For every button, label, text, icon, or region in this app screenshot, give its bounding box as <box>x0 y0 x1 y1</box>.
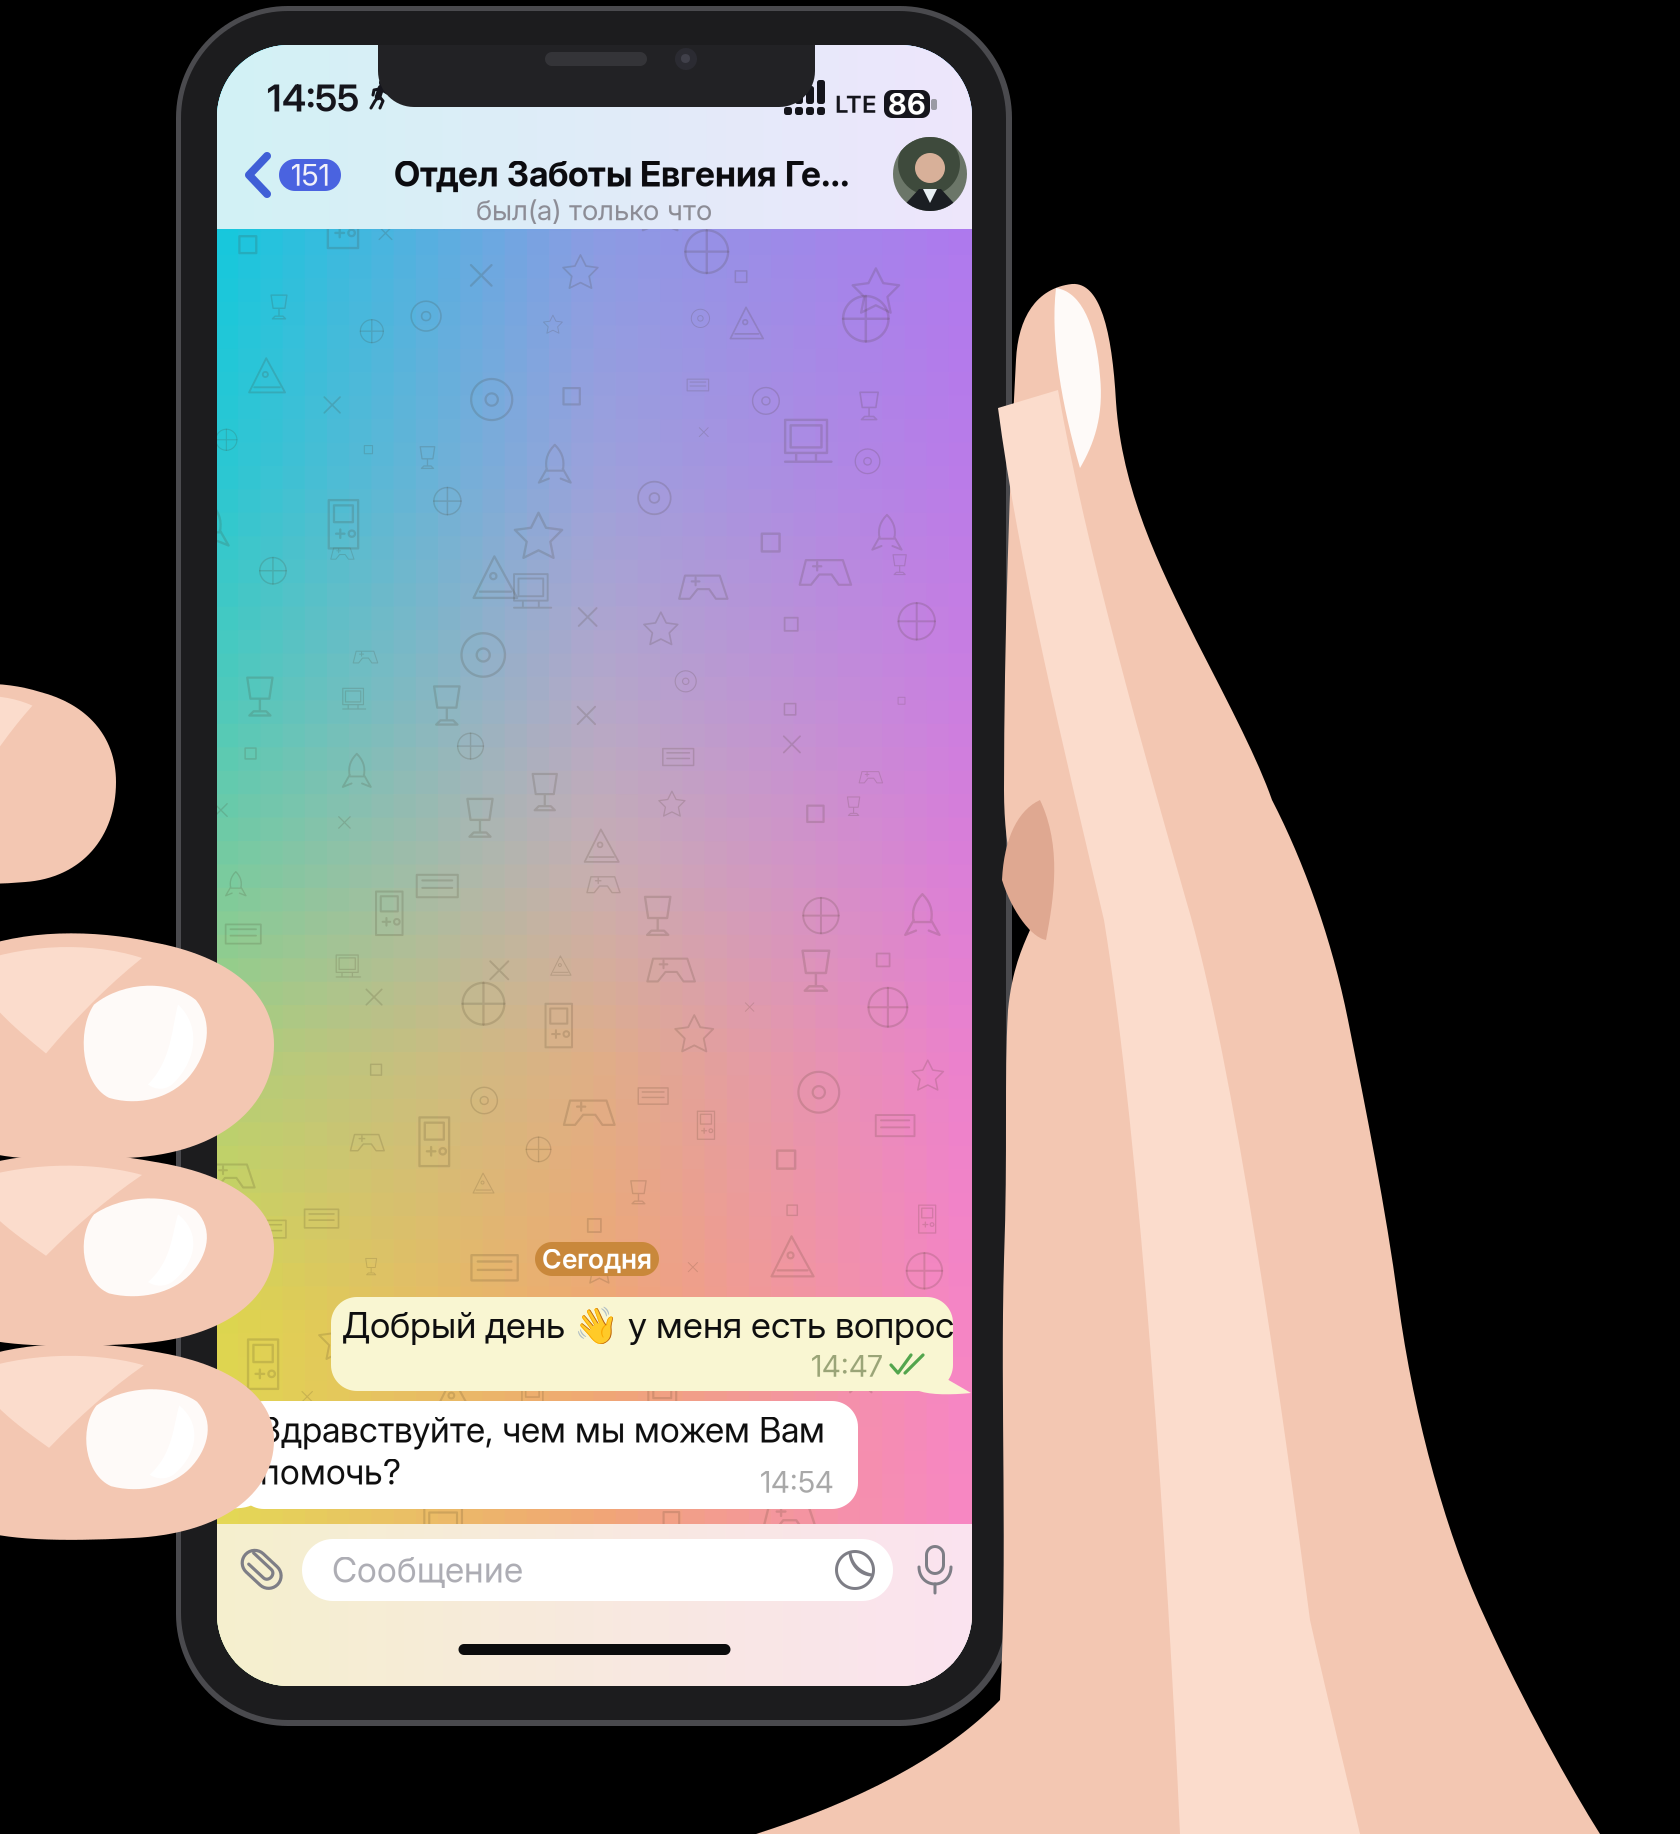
staticText: 14:47 <box>811 1348 883 1384</box>
button[interactable]: Attach file <box>235 1542 289 1596</box>
staticText: 151 <box>290 157 329 193</box>
staticText: 14:54 <box>760 1464 834 1500</box>
staticText: Здравствуйте, чем мы можем Вам <box>260 1409 825 1451</box>
staticText: 14:55 <box>267 75 359 121</box>
staticText: Сегодня <box>542 1243 652 1275</box>
staticText: Отдел Заботы Евгения Ге… <box>394 153 850 195</box>
staticText: Сообщение <box>332 1549 523 1591</box>
staticText: Добрый день 👋 у меня есть вопрос <box>342 1303 954 1347</box>
staticText: был(а) только что <box>476 193 712 227</box>
button[interactable]: Chat profile photo <box>893 137 967 211</box>
button[interactable]: Record voice message <box>916 1545 954 1595</box>
staticText: помочь? <box>260 1451 401 1493</box>
button[interactable]: Сообщение <box>302 1539 893 1601</box>
button[interactable]: 151 <box>231 137 357 213</box>
staticText: 86 <box>888 86 926 122</box>
staticText: LTE <box>835 89 876 118</box>
